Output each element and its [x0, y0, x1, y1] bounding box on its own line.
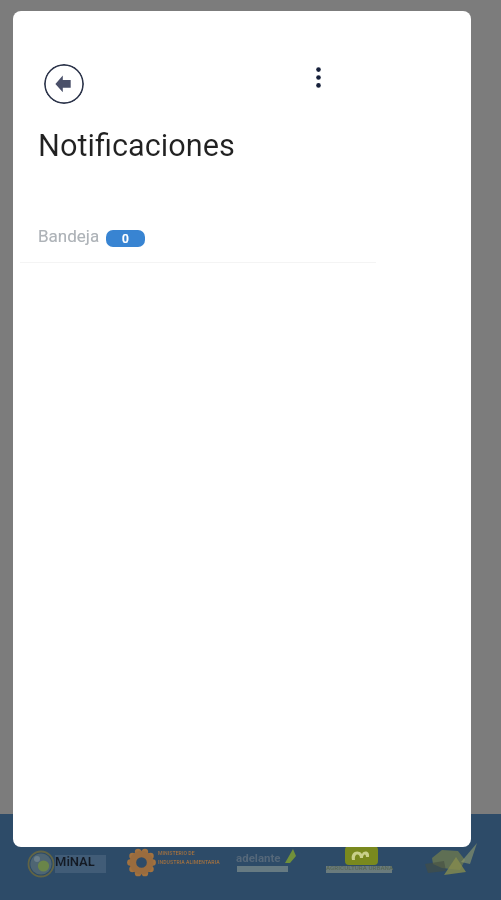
- staticText: MiNAL: [55, 854, 95, 869]
- staticText: adelante: [236, 851, 281, 864]
- staticText: AGRICULTURA URBANA: [326, 864, 394, 871]
- staticText: Bandeja: [38, 226, 100, 246]
- button[interactable]: More options: [297, 57, 338, 98]
- staticText: 0: [122, 232, 129, 246]
- staticText: Notificaciones: [38, 128, 235, 164]
- button[interactable]: Bandeja: [38, 220, 145, 252]
- staticText: MINISTERIO DE INDUSTRIA ALIMENTARIA: [158, 850, 220, 866]
- button[interactable]: Back: [44, 64, 84, 104]
